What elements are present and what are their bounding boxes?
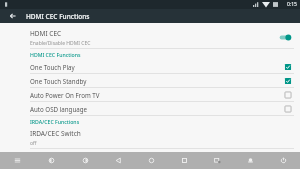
button[interactable]: HDMI CEC (0, 27, 300, 48)
button[interactable]: Home (135, 152, 168, 169)
button[interactable]: Volume down (34, 152, 68, 169)
staticText: One Touch Standby (30, 77, 284, 85)
button[interactable]: One Touch Play (0, 60, 300, 73)
staticText: One Touch Play (30, 63, 284, 71)
staticText: 0:15 (287, 1, 297, 8)
button[interactable]: Back (0, 9, 26, 23)
staticText: Auto OSD language (30, 105, 284, 113)
staticText: Auto Power On From TV (30, 91, 284, 99)
button[interactable]: Apps (234, 152, 267, 169)
button[interactable]: Volume up (68, 152, 102, 169)
button[interactable]: Menu (0, 152, 34, 169)
staticText: HDMI CEC (30, 29, 62, 38)
staticText: HDMI CEC Functions (26, 12, 90, 21)
button[interactable]: Recents (168, 152, 201, 169)
staticText: IRDA/CEC Functions (30, 118, 80, 125)
button[interactable]: IRDA/CEC Switch (0, 127, 300, 148)
button[interactable]: Power (267, 152, 300, 169)
staticText: Enable/Disable HDMI CEC (30, 40, 91, 47)
staticText: HDMI CEC Functions (30, 51, 81, 58)
button[interactable]: One Touch Standby (0, 74, 300, 87)
button[interactable]: Screenshot (201, 152, 234, 169)
staticText: IRDA/CEC Switch (30, 129, 81, 138)
button[interactable]: Auto OSD language (0, 102, 300, 115)
button[interactable]: Auto Power On From TV (0, 88, 300, 101)
staticText: off (30, 140, 37, 147)
button[interactable]: Back (102, 152, 135, 169)
